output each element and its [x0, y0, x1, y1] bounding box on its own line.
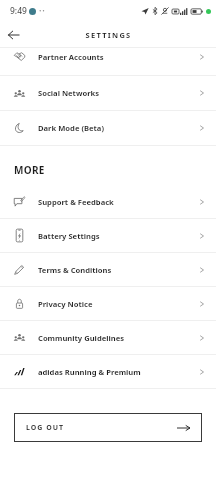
button[interactable]: Battery Settings [0, 219, 216, 252]
staticText: LOG OUT [26, 423, 65, 433]
staticText: adidas Running & Premium [38, 367, 141, 377]
staticText: Battery Settings [38, 231, 100, 241]
staticText: Privacy Notice [38, 299, 93, 309]
staticText: Community Guidelines [38, 333, 125, 343]
button[interactable]: Social Networks [0, 76, 216, 110]
staticText: Support & Feedback [38, 197, 114, 207]
staticText: Partner Accounts [38, 52, 104, 62]
staticText: Dark Mode (Beta) [38, 123, 104, 133]
staticText: SETTINGS [85, 30, 132, 40]
button[interactable]: Dark Mode (Beta) [0, 111, 216, 145]
button[interactable]: Community Guidelines [0, 321, 216, 354]
button[interactable]: LOG OUT [14, 413, 202, 442]
staticText: Terms & Conditions [38, 265, 112, 275]
staticText: 9:49 [10, 5, 27, 17]
button[interactable]: Terms & Conditions [0, 253, 216, 286]
button[interactable]: Back [0, 22, 26, 47]
button[interactable]: Support & Feedback [0, 185, 216, 218]
staticText: Social Networks [38, 88, 100, 98]
button[interactable]: Privacy Notice [0, 287, 216, 320]
button[interactable]: adidas Running & Premium [0, 355, 216, 388]
staticText: MORE [14, 163, 45, 177]
button[interactable]: Partner Accounts [0, 48, 216, 75]
